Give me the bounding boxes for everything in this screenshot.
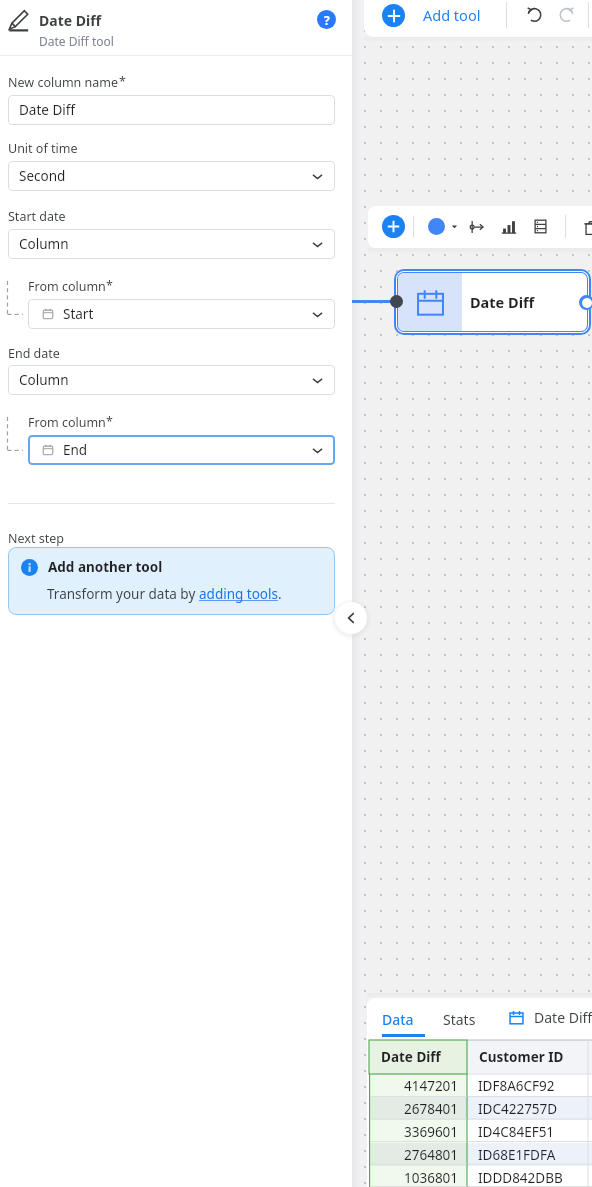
staticText: Date Diff [381,1048,441,1066]
staticText: 1036801 [404,1169,459,1187]
staticText: Customer ID [479,1048,564,1066]
button[interactable]: Column [8,365,335,395]
button[interactable]: Date Diff [8,95,335,125]
button[interactable]: Column [8,229,335,259]
button[interactable]: Branch [468,219,484,235]
staticText: adding tools [199,585,278,603]
staticText: Stats [443,1010,476,1029]
staticText: From column [28,414,106,431]
button[interactable]: Chart [501,219,517,235]
staticText: ID4C84EF51 [478,1123,555,1141]
staticText: IDF8A6CF92 [478,1077,555,1095]
button[interactable]: Add node [382,215,405,238]
staticText: Date Diff [534,1008,592,1027]
staticText: Start date [8,208,66,225]
staticText: Second [19,167,66,185]
staticText: Transform your data by [47,585,199,603]
staticText: * [106,277,113,294]
staticText: New column name [8,74,119,91]
button[interactable]: Second [8,161,335,191]
button[interactable]: Add another tool [8,547,335,615]
button[interactable]: Colour [428,218,445,235]
staticText: Date Diff [19,101,76,119]
staticText: From column [28,278,106,295]
staticText: . [278,585,282,603]
staticText: Date Diff [470,292,535,312]
button[interactable]: Table [533,219,548,234]
staticText: Next step [8,530,64,547]
staticText: Column [19,371,69,389]
staticText: Data [382,1010,414,1029]
staticText: ? [324,12,330,28]
button[interactable]: Date Diff [509,1008,592,1027]
staticText: * [119,73,126,90]
staticText: 4147201 [404,1077,459,1095]
button[interactable]: Stats [443,1010,476,1029]
button[interactable]: Date Diff [394,269,591,335]
staticText: Add another tool [48,558,163,576]
staticText: End [63,441,88,459]
staticText: Unit of time [8,140,78,157]
button[interactable]: Redo [557,5,576,24]
button[interactable]: Colour menu [450,222,459,231]
staticText: 2764801 [404,1146,459,1164]
staticText: IDDD842DBB [478,1169,563,1187]
button[interactable]: End [28,435,335,465]
button[interactable]: Add tool [423,5,481,25]
staticText: End date [8,345,60,362]
staticText: ID68E1FDFA [478,1146,556,1164]
staticText: Date Diff [39,11,101,30]
staticText: Start [63,305,94,323]
button[interactable]: Data [382,1010,414,1029]
staticText: * [106,413,113,430]
staticText: Column [19,235,69,253]
staticText: Date Diff tool [39,33,114,49]
button[interactable]: Delete [583,220,592,236]
button[interactable]: Undo [525,5,544,24]
button[interactable]: Collapse panel [335,602,367,634]
staticText: 2678401 [404,1100,459,1118]
staticText: IDC422757D [478,1100,558,1118]
button[interactable]: Start [28,299,335,329]
staticText: Add tool [423,5,481,25]
button[interactable]: Add tool [382,4,405,27]
staticText: 3369601 [404,1123,459,1141]
button[interactable]: Help [317,10,336,29]
